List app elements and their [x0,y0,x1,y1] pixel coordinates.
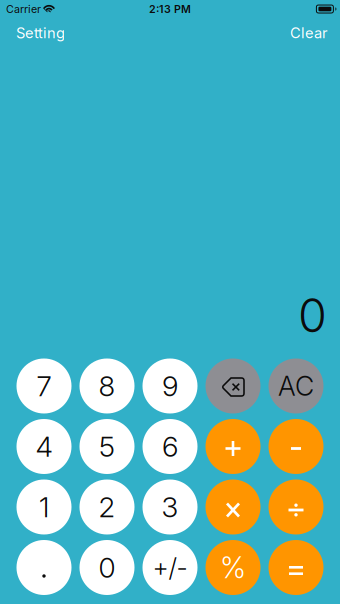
staticText: 6 [162,430,178,463]
button[interactable]: +/- [142,540,197,595]
button[interactable]: Delete [205,358,260,413]
staticText: 5 [99,430,115,463]
staticText: 4 [35,430,52,463]
staticText: 0 [298,287,327,343]
button[interactable]: 3 [142,479,197,534]
staticText: Setting [16,24,65,42]
staticText: 7 [36,369,51,403]
staticText: Carrier [6,2,41,15]
staticText: 0 [98,551,115,584]
staticText: 3 [161,490,178,524]
staticText: 2 [98,490,115,524]
button[interactable]: 9 [142,358,197,413]
button[interactable]: Setting [16,18,65,48]
staticText: 9 [162,369,178,403]
staticText: 2:13 PM [149,2,191,15]
button[interactable]: 7 [16,358,71,413]
button[interactable]: 1 [16,479,71,534]
staticText: Clear [290,24,328,42]
button[interactable]: Clear [290,18,328,48]
button[interactable]: 4 [16,419,71,474]
button[interactable]: Divide [268,479,323,534]
staticText: AC [278,370,314,402]
staticText: 1 [39,490,49,524]
staticText: % [220,550,246,585]
button[interactable]: 2 [79,479,134,534]
button[interactable]: Decimal point [16,540,71,595]
staticText: 8 [98,369,115,403]
button[interactable]: Equals [268,540,323,595]
button[interactable]: Minus [268,419,323,474]
button[interactable]: Multiply [205,479,260,534]
button[interactable]: 8 [79,358,134,413]
button[interactable]: Plus [205,419,260,474]
button[interactable]: 6 [142,419,197,474]
button[interactable]: 5 [79,419,134,474]
button[interactable]: % [205,540,260,595]
button[interactable]: AC [268,358,323,413]
staticText: +/- [152,552,187,583]
button[interactable]: 0 [79,540,134,595]
